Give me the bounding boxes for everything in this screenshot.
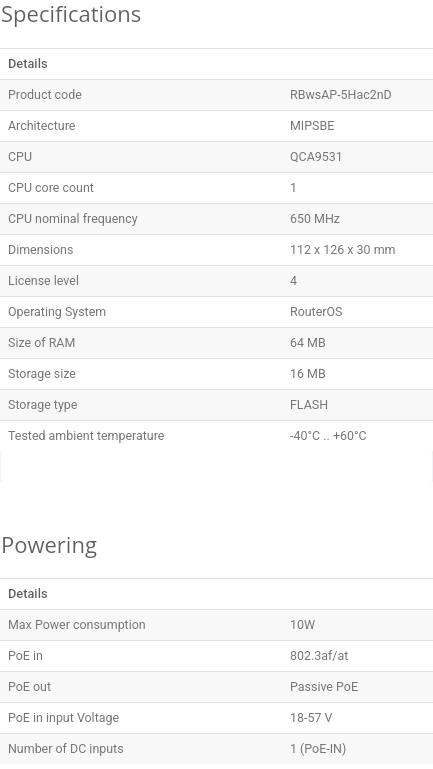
staticText: 16 MB [290, 366, 326, 381]
staticText: Architecture [8, 118, 290, 133]
staticText: -40°C .. +60°C [290, 428, 367, 443]
button[interactable]: Storage size [0, 359, 433, 389]
button[interactable]: PoE in input Voltage [0, 703, 433, 733]
staticText: Powering [1, 529, 97, 559]
staticText: Dimensions [8, 242, 290, 257]
button[interactable]: Number of DC inputs [0, 734, 433, 764]
staticText: 1 (PoE-IN) [290, 741, 347, 756]
button[interactable]: PoE in [0, 641, 433, 671]
staticText: License level [8, 273, 290, 288]
staticText: Details [8, 586, 48, 601]
staticText: QCA9531 [290, 149, 343, 164]
staticText: Number of DC inputs [8, 741, 290, 756]
staticText: 112 x 126 x 30 mm [290, 242, 396, 257]
staticText: Passive PoE [290, 679, 358, 694]
staticText: 4 [290, 273, 297, 288]
staticText: 1 [290, 180, 297, 195]
button[interactable]: Storage type [0, 390, 433, 420]
button[interactable]: Product code [0, 80, 433, 110]
button[interactable]: CPU [0, 142, 433, 172]
staticText: 10W [290, 617, 316, 632]
button[interactable]: License level [0, 266, 433, 296]
staticText: CPU nominal frequency [8, 211, 290, 226]
button[interactable]: Tested ambient temperature [0, 421, 433, 451]
staticText: FLASH [290, 397, 329, 412]
staticText: 18-57 V [290, 710, 333, 725]
button[interactable]: CPU nominal frequency [0, 204, 433, 234]
button[interactable]: Operating System [0, 297, 433, 327]
staticText: RBwsAP-5Hac2nD [290, 87, 392, 102]
staticText: RouterOS [290, 304, 343, 319]
button[interactable]: Dimensions [0, 235, 433, 265]
staticText: CPU [8, 149, 290, 164]
staticText: Tested ambient temperature [8, 428, 290, 443]
staticText: PoE out [8, 679, 290, 694]
button[interactable]: Architecture [0, 111, 433, 141]
staticText: PoE in [8, 648, 290, 663]
staticText: Storage type [8, 397, 290, 412]
staticText: Max Power consumption [8, 617, 290, 632]
staticText: Operating System [8, 304, 290, 319]
button[interactable]: PoE out [0, 672, 433, 702]
staticText: Storage size [8, 366, 290, 381]
staticText: 802.3af/at [290, 648, 349, 663]
staticText: Product code [8, 87, 290, 102]
staticText: 64 MB [290, 335, 326, 350]
staticText: MIPSBE [290, 118, 335, 133]
staticText: CPU core count [8, 180, 290, 195]
staticText: Specifications [1, 0, 142, 28]
button[interactable]: Max Power consumption [0, 610, 433, 640]
button[interactable]: Size of RAM [0, 328, 433, 358]
staticText: 650 MHz [290, 211, 340, 226]
staticText: Details [8, 56, 48, 71]
staticText: Size of RAM [8, 335, 290, 350]
staticText: PoE in input Voltage [8, 710, 290, 725]
button[interactable]: CPU core count [0, 173, 433, 203]
